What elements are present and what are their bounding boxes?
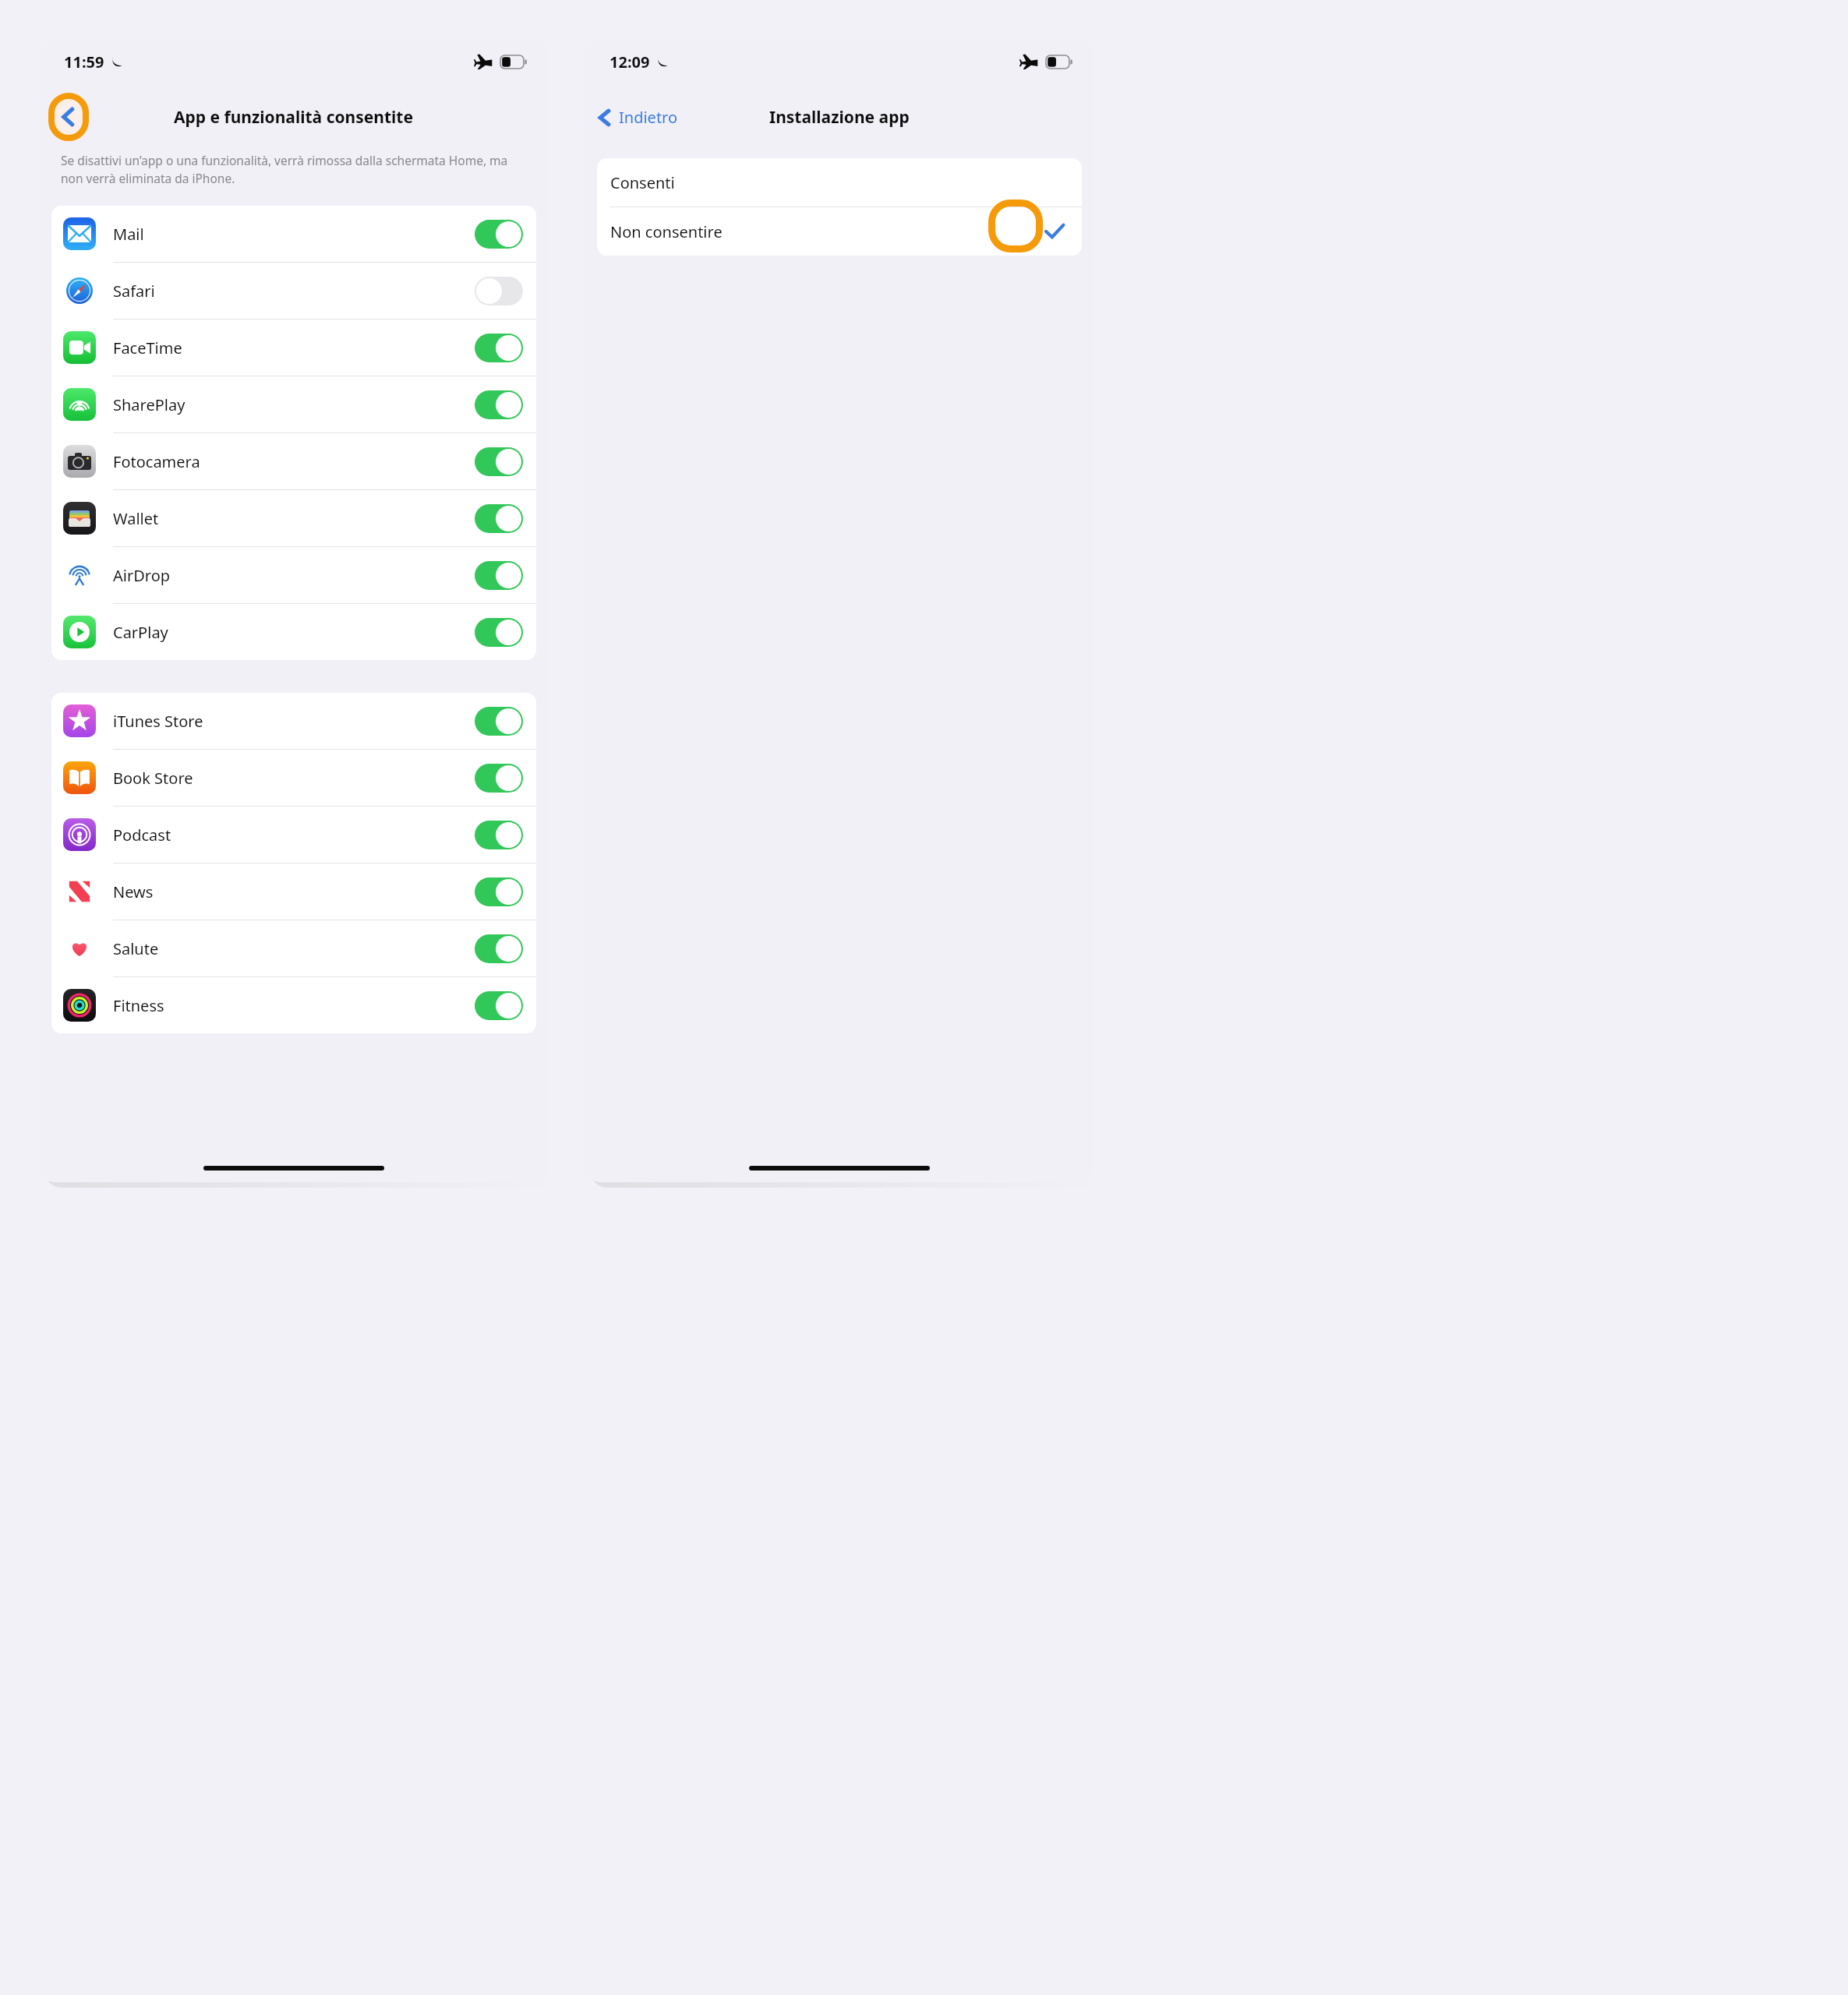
staticText: Se disattivi un’app o una funzionalità, … bbox=[61, 152, 527, 187]
button[interactable] bbox=[475, 277, 523, 305]
staticText: Wallet bbox=[113, 508, 159, 529]
staticText: Book Store bbox=[113, 768, 193, 789]
staticText: SharePlay bbox=[113, 394, 186, 415]
staticText: Safari bbox=[113, 281, 155, 302]
staticText: Non consentire bbox=[610, 221, 723, 242]
button[interactable]: Salute bbox=[51, 920, 536, 977]
button[interactable] bbox=[475, 764, 523, 793]
button[interactable] bbox=[475, 821, 523, 849]
button[interactable]: Wallet bbox=[51, 490, 536, 547]
staticText: iTunes Store bbox=[113, 711, 203, 732]
staticText: FaceTime bbox=[113, 337, 182, 358]
button[interactable] bbox=[475, 707, 523, 736]
button[interactable]: News bbox=[51, 863, 536, 920]
staticText: Mail bbox=[113, 224, 144, 245]
button[interactable]: Non consentire bbox=[597, 207, 1082, 256]
button[interactable] bbox=[475, 447, 523, 476]
button[interactable]: Podcast bbox=[51, 807, 536, 863]
staticText: News bbox=[113, 881, 154, 902]
button[interactable] bbox=[475, 561, 523, 590]
button[interactable] bbox=[475, 877, 523, 906]
staticText: Indietro bbox=[619, 107, 678, 128]
staticText: 11:59 bbox=[64, 51, 104, 72]
staticText: Consenti bbox=[610, 172, 675, 193]
staticText: App e funzionalità consentite bbox=[174, 106, 414, 129]
button[interactable]: Indietro bbox=[48, 93, 89, 141]
staticText: Fotocamera bbox=[113, 451, 200, 472]
staticText: 12:09 bbox=[610, 51, 650, 72]
staticText: AirDrop bbox=[113, 565, 171, 586]
button[interactable]: CarPlay bbox=[51, 604, 536, 660]
button[interactable]: Fotocamera bbox=[51, 433, 536, 490]
button[interactable]: Consenti bbox=[597, 158, 1082, 207]
button[interactable]: SharePlay bbox=[51, 376, 536, 433]
button[interactable]: Indietro bbox=[595, 107, 678, 128]
button[interactable] bbox=[475, 334, 523, 362]
button[interactable]: FaceTime bbox=[51, 320, 536, 376]
button[interactable]: Book Store bbox=[51, 750, 536, 807]
button[interactable] bbox=[475, 220, 523, 249]
button[interactable] bbox=[475, 991, 523, 1020]
button[interactable]: Mail bbox=[51, 206, 536, 263]
button[interactable] bbox=[475, 390, 523, 419]
button[interactable]: AirDrop bbox=[51, 547, 536, 604]
button[interactable] bbox=[475, 504, 523, 533]
button[interactable] bbox=[475, 934, 523, 963]
button[interactable]: Fitness bbox=[51, 977, 536, 1033]
button[interactable]: Safari bbox=[51, 263, 536, 320]
staticText: Podcast bbox=[113, 824, 171, 846]
staticText: Salute bbox=[113, 938, 159, 959]
staticText: CarPlay bbox=[113, 622, 168, 643]
button[interactable] bbox=[475, 618, 523, 647]
button[interactable]: iTunes Store bbox=[51, 693, 536, 750]
staticText: Fitness bbox=[113, 995, 164, 1016]
staticText: Installazione app bbox=[769, 106, 910, 129]
